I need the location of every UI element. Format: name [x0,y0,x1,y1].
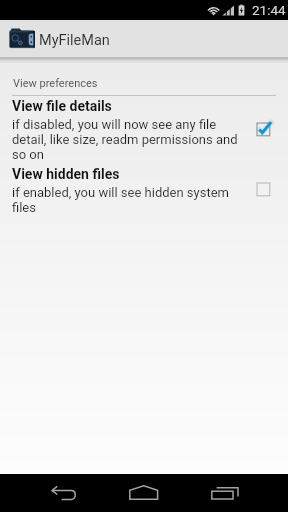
staticText: MyFileMan [39,32,110,49]
button[interactable]: Unchecked [255,181,275,201]
button[interactable] [0,20,288,58]
button[interactable]: View file details [0,95,288,161]
button[interactable]: View hidden files [0,163,288,215]
staticText: if enabled, you will see hidden system f… [12,185,244,215]
button[interactable]: Back [34,474,94,512]
button[interactable]: Home [114,474,174,512]
button[interactable]: View preferences [13,77,98,90]
staticText: 21:44 [252,2,286,18]
staticText: if disabled, you will now see any file d… [12,117,244,162]
staticText: View preferences [13,77,98,90]
button[interactable]: Checked [255,121,275,141]
button[interactable]: Recent apps [195,474,255,512]
staticText: View hidden files [12,166,120,182]
staticText: View file details [12,98,112,114]
